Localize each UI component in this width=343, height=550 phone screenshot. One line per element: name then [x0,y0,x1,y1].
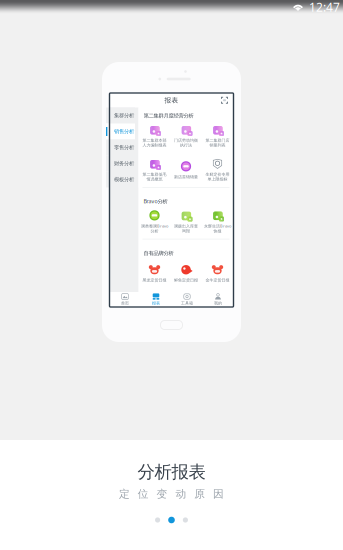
button[interactable]: 黑龙定货日报 [139,257,170,289]
button[interactable]: 永辉生活Bravo [202,206,233,238]
staticText: 情况概览 [146,177,162,182]
button[interactable]: 调类整调Bravo [139,206,170,238]
staticText: 位 [138,487,149,500]
staticText: 第二集群门店 [205,138,229,143]
button[interactable]: 调拨出入库查 [171,206,201,238]
staticText: 门店劳动均衡 [174,138,198,143]
staticText: 动 [175,487,186,500]
staticText: 工具箱 [181,301,193,306]
staticText: 财务分析 [114,160,134,167]
button[interactable]: 模板分析 [109,171,138,187]
button[interactable]: 第二集群本部 [139,120,170,152]
staticText: 模板分析 [114,176,134,183]
staticText: 快报 [213,229,221,234]
button[interactable]: 第二集群低毛 [139,154,170,186]
staticText: 询报 [182,228,190,233]
staticText: 第二集群月度经营分析 [143,112,193,119]
staticText: 调拨出入库查 [174,224,198,228]
button[interactable]: 集群分析 [109,107,138,123]
staticText: Bravo分析 [143,198,167,205]
staticText: 新店首销销量 [174,174,198,179]
button[interactable]: Fullscreen [218,94,230,106]
staticText: 报表 [152,301,160,306]
staticText: 原 [194,487,205,500]
button[interactable]: 第二集群门店 [202,120,233,152]
button[interactable]: 金牛定货日报 [202,257,233,289]
staticText: 鲜鱼定货日报 [174,278,198,283]
staticText: 销售分析 [114,128,134,135]
staticText: 报表 [164,96,178,104]
staticText: 分析报表 [137,461,205,483]
staticText: 12:47 [309,0,340,15]
staticText: 集群分析 [114,112,134,119]
staticText: 调类整调Bravo [141,223,168,229]
staticText: 金牛定货日报 [205,278,229,283]
staticText: 分析 [150,229,158,234]
button[interactable]: 鲜鱼定货日报 [171,257,201,289]
button[interactable]: 门店劳动均衡 [171,120,201,152]
staticText: 自有品牌分析 [143,250,173,256]
staticText: 永辉生活Bravo [204,223,231,229]
staticText: 第二集群低毛 [142,172,166,177]
staticText: 生鲜定价专用 [205,172,229,177]
button[interactable]: 我的 [202,292,233,307]
staticText: 定 [119,487,130,500]
button[interactable]: 首页 [109,292,140,307]
staticText: 因 [213,487,224,500]
staticText: 零售分析 [114,144,134,151]
staticText: 首页 [121,301,129,306]
staticText: 变 [157,487,168,500]
button[interactable]: 销售分析 [109,123,138,139]
staticText: 黑龙定货日报 [142,278,166,283]
staticText: 执行法 [180,143,192,148]
button[interactable]: 财务分析 [109,155,138,171]
button[interactable]: 报表 [140,292,171,307]
button[interactable]: 零售分析 [109,139,138,155]
staticText: 我的 [214,301,222,306]
staticText: 人力编制报表 [142,143,166,148]
staticText: 单上限指标 [207,177,227,182]
button[interactable]: 工具箱 [171,292,202,307]
staticText: 第二集群本部 [142,138,166,143]
button[interactable]: 生鲜定价专用 [202,154,233,186]
button[interactable]: 新店首销销量 [171,154,201,186]
staticText: 销量列表 [209,143,225,148]
